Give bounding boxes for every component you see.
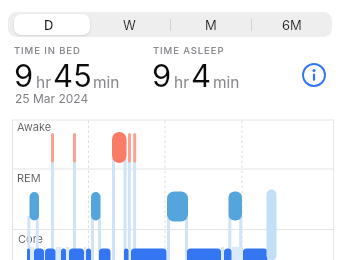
staticText: D xyxy=(44,17,54,33)
staticText: 9 xyxy=(14,57,34,95)
staticText: min xyxy=(93,73,120,92)
button[interactable]: W xyxy=(89,12,170,37)
staticText: M xyxy=(205,17,217,33)
staticText: TIME ASLEEP xyxy=(153,45,225,56)
button[interactable]: D xyxy=(8,12,89,37)
staticText: min xyxy=(213,73,240,92)
staticText: 6M xyxy=(282,17,302,33)
staticText: TIME IN BED xyxy=(14,45,81,56)
staticText: Core xyxy=(18,232,44,245)
staticText: Awake xyxy=(17,120,52,133)
staticText: REM xyxy=(17,171,41,184)
staticText: hr xyxy=(174,73,190,92)
staticText: 9 xyxy=(152,57,172,95)
staticText: hr xyxy=(36,73,52,92)
staticText: 4 xyxy=(191,57,212,95)
button[interactable]: 6M xyxy=(251,12,332,37)
staticText: W xyxy=(123,17,136,33)
staticText: 45 xyxy=(53,57,92,95)
staticText: 25 Mar 2024 xyxy=(15,91,89,106)
button[interactable]: M xyxy=(170,12,251,37)
button[interactable] xyxy=(301,62,327,88)
